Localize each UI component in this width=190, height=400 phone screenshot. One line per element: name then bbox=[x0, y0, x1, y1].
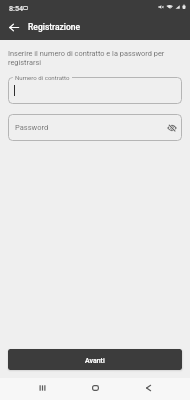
staticText: Password bbox=[15, 123, 49, 132]
button[interactable] bbox=[8, 77, 182, 104]
button[interactable]: Home bbox=[69, 377, 122, 399]
button[interactable]: Password bbox=[8, 114, 182, 141]
staticText: 8:54 bbox=[9, 4, 24, 12]
button[interactable]: Indietro bbox=[0, 14, 28, 40]
button[interactable]: Avanti bbox=[8, 349, 182, 370]
staticText: Registrazione bbox=[28, 22, 81, 32]
staticText: Numero di contratto bbox=[15, 74, 70, 81]
button[interactable]: Indietro bbox=[122, 377, 175, 399]
staticText: Inserire il numero di contratto e la pas… bbox=[8, 49, 174, 67]
button[interactable]: Mostra password bbox=[162, 118, 182, 138]
button[interactable]: Panoramica bbox=[15, 377, 69, 399]
staticText: Avanti bbox=[85, 357, 105, 365]
